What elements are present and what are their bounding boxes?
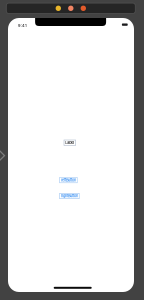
staticText: leftButton — [61, 178, 76, 182]
button[interactable]: rightButton — [60, 193, 79, 199]
button[interactable]: Close — [68, 6, 73, 11]
staticText: 9:41 — [18, 23, 27, 28]
button[interactable]: Minimise — [56, 6, 61, 11]
staticText: Label — [65, 140, 74, 145]
button[interactable]: leftButton — [60, 177, 77, 183]
button[interactable]: Zoom — [81, 6, 86, 11]
staticText: rightButton — [61, 194, 78, 198]
